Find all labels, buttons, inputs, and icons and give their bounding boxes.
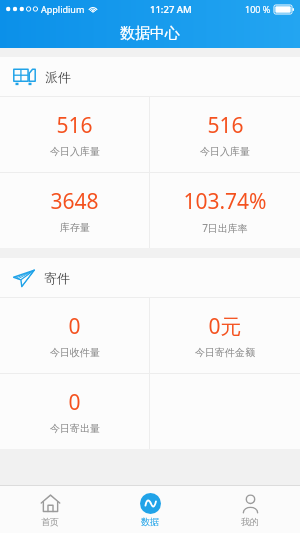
other: 寄件 bbox=[13, 269, 35, 287]
staticText: 数据 bbox=[141, 516, 159, 527]
staticText: 今日入库量 bbox=[50, 145, 100, 158]
other: 首页 bbox=[40, 493, 61, 514]
staticText: 今日寄出量 bbox=[50, 422, 100, 435]
staticText: 今日收件量 bbox=[50, 346, 100, 359]
staticText: 我的 bbox=[241, 516, 259, 527]
staticText: 100 % bbox=[245, 3, 271, 15]
button[interactable]: 103.74% bbox=[150, 173, 300, 248]
staticText: 首页 bbox=[41, 516, 59, 527]
button[interactable]: 0元 bbox=[150, 298, 300, 373]
button[interactable]: 派件 bbox=[0, 57, 300, 96]
staticText: 0元 bbox=[208, 312, 242, 341]
staticText: 516 bbox=[56, 111, 93, 140]
button[interactable]: 3648 bbox=[0, 173, 149, 248]
staticText: 0 bbox=[68, 388, 81, 417]
button[interactable]: 我的 bbox=[200, 486, 300, 533]
staticText: 7日出库率 bbox=[202, 221, 248, 235]
other: 派件 bbox=[13, 68, 36, 86]
other: 我的 bbox=[240, 493, 261, 514]
staticText: 3648 bbox=[50, 187, 99, 216]
staticText: 数据中心 bbox=[120, 24, 180, 43]
staticText: Applidium bbox=[41, 3, 85, 15]
staticText: 派件 bbox=[45, 69, 71, 85]
staticText: 0 bbox=[68, 312, 81, 341]
staticText: 103.74% bbox=[183, 187, 267, 216]
button[interactable]: 首页 bbox=[0, 486, 100, 533]
staticText: 今日入库量 bbox=[200, 145, 250, 158]
staticText: 库存量 bbox=[60, 221, 90, 234]
staticText: 今日寄件金额 bbox=[195, 346, 255, 359]
button[interactable]: 516 bbox=[150, 97, 300, 172]
other: 数据 bbox=[140, 493, 161, 514]
button[interactable]: 516 bbox=[0, 97, 149, 172]
button[interactable]: 0 bbox=[0, 298, 149, 373]
button[interactable]: 0 bbox=[0, 374, 149, 449]
button[interactable]: 数据 bbox=[100, 486, 200, 533]
staticText: 寄件 bbox=[44, 270, 70, 286]
button[interactable]: 寄件 bbox=[0, 258, 300, 297]
staticText: 11:27 AM bbox=[150, 3, 192, 16]
staticText: 516 bbox=[207, 111, 244, 140]
